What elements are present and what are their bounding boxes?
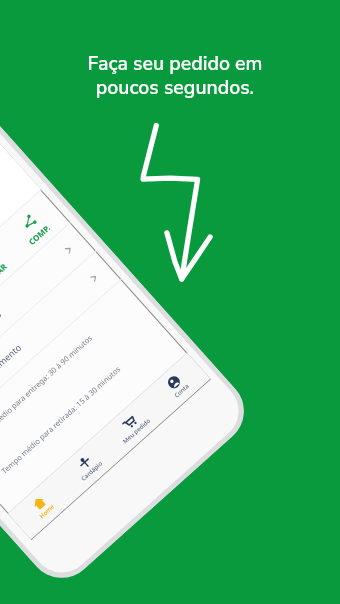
staticText: Home xyxy=(38,502,56,520)
staticText: Cardápio xyxy=(79,459,104,483)
staticText: Conta xyxy=(173,382,191,399)
button[interactable]: Horário de funcionamento xyxy=(0,222,96,412)
staticText: COMP. xyxy=(26,221,53,247)
staticText: Horário de funcionamento xyxy=(0,307,4,392)
staticText: Tempo médio para entrega: 30 à 90 minuto… xyxy=(0,333,94,444)
button[interactable]: Conta xyxy=(147,358,206,414)
staticText: AVALIAR xyxy=(0,261,9,292)
button[interactable]: Sobre o estabelecimento xyxy=(0,250,122,440)
button[interactable]: Cardápio xyxy=(57,438,117,494)
staticText: Sobre o estabelecimento xyxy=(0,341,23,420)
staticText: Faça seu pedido em poucos segundos. xyxy=(10,50,340,101)
button[interactable]: Meu pedido xyxy=(102,398,162,454)
button[interactable]: Home xyxy=(12,478,72,535)
staticText: Meu pedido xyxy=(121,416,153,445)
staticText: Tempo médio para retirada: 15 à 30 minut… xyxy=(0,363,123,476)
button[interactable]: AVALIAR xyxy=(0,239,23,305)
button[interactable]: COMP. xyxy=(2,197,69,263)
